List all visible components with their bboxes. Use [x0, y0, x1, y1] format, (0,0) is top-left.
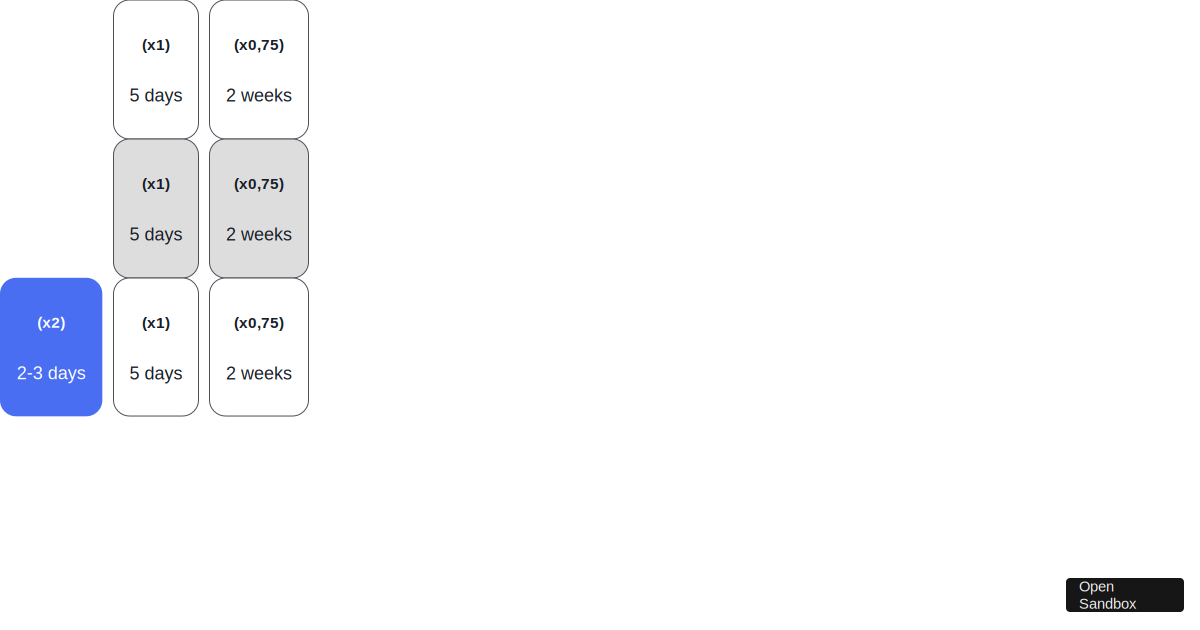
staticText: 2 weeks	[226, 363, 292, 383]
button[interactable]: (x1)	[113, 139, 198, 278]
staticText: 2 weeks	[226, 224, 292, 244]
staticText: 5 days	[129, 85, 182, 105]
staticText: (x1)	[142, 314, 170, 331]
button[interactable]: (x0,75)	[209, 139, 308, 278]
staticText: 5 days	[129, 224, 182, 244]
staticText: (x2)	[37, 314, 65, 331]
staticText: 2 weeks	[226, 85, 292, 105]
staticText: (x0,75)	[234, 36, 284, 53]
button[interactable]: (x0,75)	[209, 278, 308, 416]
staticText: (x0,75)	[234, 314, 284, 331]
button[interactable]: (x0,75)	[209, 0, 308, 139]
button[interactable]: (x1)	[113, 278, 198, 416]
button[interactable]: (x1)	[113, 0, 198, 139]
button[interactable]: Open	[1066, 578, 1184, 612]
staticText: (x1)	[142, 36, 170, 53]
staticText: (x1)	[142, 175, 170, 192]
staticText: (x0,75)	[234, 175, 284, 192]
staticText: 5 days	[129, 363, 182, 383]
staticText: 2-3 days	[17, 363, 86, 383]
staticText: Sandbox	[1079, 595, 1136, 612]
button[interactable]: (x2)	[0, 278, 102, 416]
staticText: Open	[1079, 578, 1114, 594]
